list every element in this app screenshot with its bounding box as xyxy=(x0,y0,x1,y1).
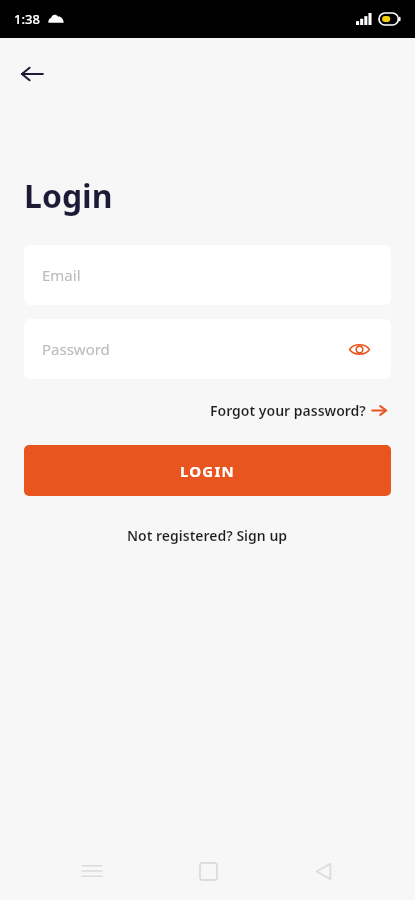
staticText: Login xyxy=(24,174,113,218)
staticText: Forgot your password? xyxy=(210,401,366,420)
button[interactable]: Home xyxy=(184,847,232,895)
button[interactable]: Email xyxy=(24,245,391,305)
button[interactable]: Back xyxy=(299,847,347,895)
staticText: Not registered? Sign up xyxy=(127,526,288,545)
button[interactable]: Forgot your password? xyxy=(206,397,391,424)
staticText: 1:38 xyxy=(14,10,40,28)
button[interactable]: Recents xyxy=(68,847,116,895)
staticText: LOGIN xyxy=(180,461,235,481)
button[interactable]: Password xyxy=(24,319,391,379)
button[interactable]: LOGIN xyxy=(24,445,391,496)
staticText: Password xyxy=(42,339,110,359)
button[interactable]: Show password xyxy=(345,335,373,363)
staticText: Email xyxy=(42,265,81,285)
button[interactable]: Not registered? Sign up xyxy=(119,522,296,549)
button[interactable]: Back xyxy=(10,52,54,96)
